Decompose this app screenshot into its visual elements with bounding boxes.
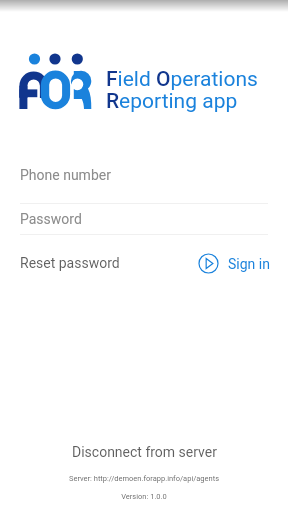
button[interactable]: Disconnect from server <box>0 443 288 461</box>
button[interactable]: Sign in <box>198 253 270 274</box>
button[interactable]: Password <box>0 208 288 235</box>
staticText: Password <box>20 211 82 227</box>
button[interactable]: Phone number <box>0 163 288 204</box>
staticText: Version: 1.0.0 <box>0 492 288 501</box>
staticText: Server: http://demoen.forapp.info/api/ag… <box>0 474 288 483</box>
staticText: Disconnect from server <box>72 444 217 460</box>
staticText: Phone number <box>20 167 111 183</box>
staticText: Field Operations <box>106 67 258 92</box>
other: Sign in <box>198 253 219 274</box>
staticText: Sign in <box>228 256 270 272</box>
button[interactable]: Reset password <box>20 255 120 271</box>
staticText: Reporting app <box>106 89 238 114</box>
staticText: Reset password <box>20 255 120 271</box>
